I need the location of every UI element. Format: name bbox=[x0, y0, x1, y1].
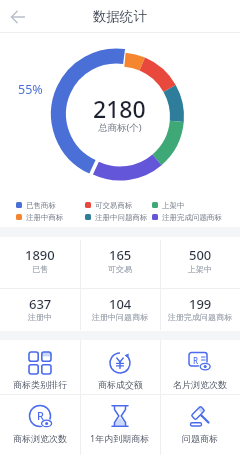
staticText: 注册中 bbox=[28, 312, 52, 322]
staticText: 55% bbox=[18, 81, 43, 98]
staticText: 199 bbox=[189, 295, 212, 313]
staticText: 可交易 bbox=[108, 264, 132, 274]
button[interactable] bbox=[160, 394, 240, 455]
staticText: 名片浏览次数 bbox=[173, 379, 227, 390]
staticText: 已售商标 bbox=[26, 201, 56, 210]
staticText: 1890 bbox=[25, 246, 55, 264]
staticText: 注册中问题商标 bbox=[95, 213, 148, 222]
button[interactable] bbox=[4, 6, 32, 28]
staticText: 可交易商标 bbox=[95, 201, 133, 210]
staticText: 商标类别排行 bbox=[13, 379, 67, 390]
staticText: 注册完成问题商标 bbox=[162, 213, 222, 222]
staticText: 上架中 bbox=[162, 201, 185, 210]
staticText: R bbox=[193, 355, 199, 366]
staticText: 165 bbox=[109, 246, 132, 264]
staticText: 上架中 bbox=[188, 264, 212, 274]
staticText: 问题商标 bbox=[182, 433, 218, 444]
staticText: 注册中商标 bbox=[26, 213, 64, 222]
staticText: 总商标(个) bbox=[98, 121, 142, 134]
staticText: 637 bbox=[29, 295, 52, 313]
staticText: 1年内到期商标 bbox=[90, 432, 150, 444]
staticText: 商标浏览次数 bbox=[13, 433, 67, 444]
button[interactable] bbox=[80, 340, 160, 394]
staticText: 注册中问题商标 bbox=[92, 312, 148, 322]
staticText: 104 bbox=[109, 295, 132, 313]
staticText: 注册完成问题商标 bbox=[168, 312, 232, 322]
button[interactable] bbox=[0, 394, 80, 455]
staticText: 已售 bbox=[32, 264, 48, 274]
staticText: R bbox=[37, 408, 44, 423]
staticText: 商标成交额 bbox=[98, 379, 143, 390]
staticText: 500 bbox=[189, 246, 212, 264]
staticText: 数据统计 bbox=[93, 8, 147, 25]
button[interactable] bbox=[80, 394, 160, 455]
button[interactable] bbox=[0, 340, 80, 394]
staticText: 2180 bbox=[93, 93, 146, 121]
button[interactable] bbox=[160, 340, 240, 394]
